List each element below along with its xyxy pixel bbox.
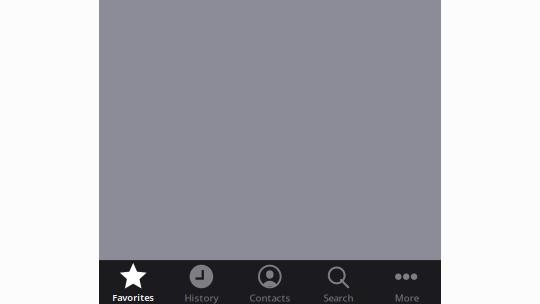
staticText: History <box>185 291 219 304</box>
button[interactable]: Favorites <box>99 260 167 304</box>
staticText: Favorites <box>112 291 154 304</box>
staticText: More <box>395 291 419 304</box>
button[interactable]: More <box>373 260 441 304</box>
button[interactable]: Search <box>304 260 373 304</box>
button[interactable]: Contacts <box>236 260 304 304</box>
staticText: Contacts <box>249 291 290 304</box>
button[interactable]: History <box>167 260 236 304</box>
staticText: Search <box>323 291 353 304</box>
